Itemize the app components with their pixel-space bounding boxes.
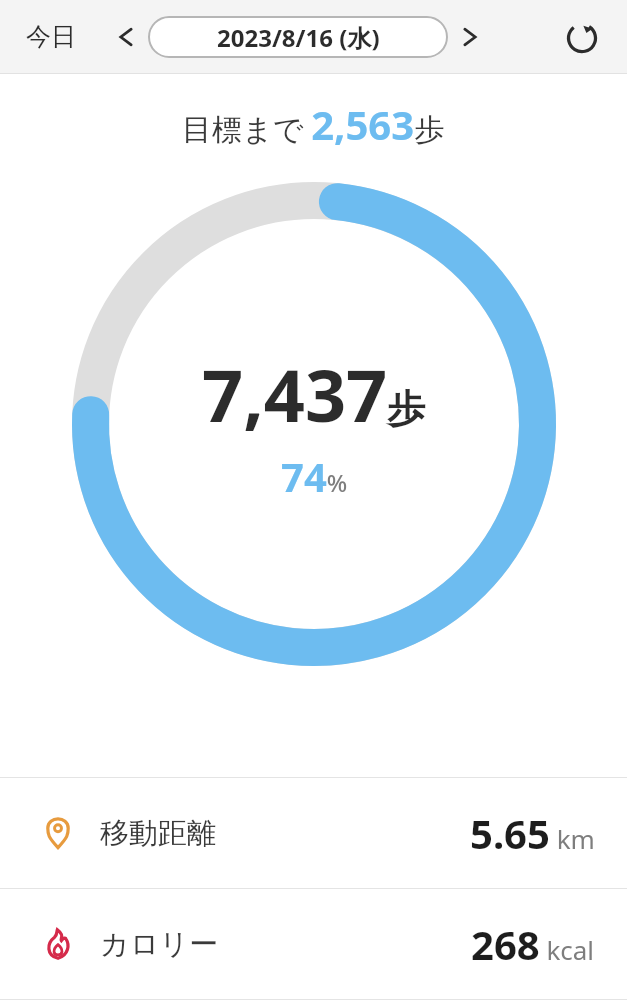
button[interactable]: Calories	[0, 889, 627, 999]
staticText: 今日	[26, 21, 76, 52]
button[interactable]: 今日	[22, 15, 80, 58]
button[interactable]: Next day	[450, 17, 490, 57]
staticText: 5.65 km	[470, 806, 595, 860]
button[interactable]: Previous day	[106, 17, 146, 57]
button[interactable]: Distance	[0, 778, 627, 888]
staticText: 2023/8/16 (水)	[217, 21, 380, 54]
button[interactable]: Refresh	[559, 14, 605, 60]
staticText: 移動距離	[100, 815, 216, 852]
staticText: 268 kcal	[471, 917, 595, 971]
other: Calories	[38, 924, 78, 964]
staticText: 74%	[281, 449, 348, 503]
other: Distance	[38, 813, 78, 853]
button[interactable]: 2023/8/16 (水)	[148, 16, 448, 58]
staticText: 目標まで 2,563歩	[182, 97, 445, 151]
staticText: カロリー	[100, 926, 219, 963]
staticText: 7,437歩	[202, 345, 426, 443]
